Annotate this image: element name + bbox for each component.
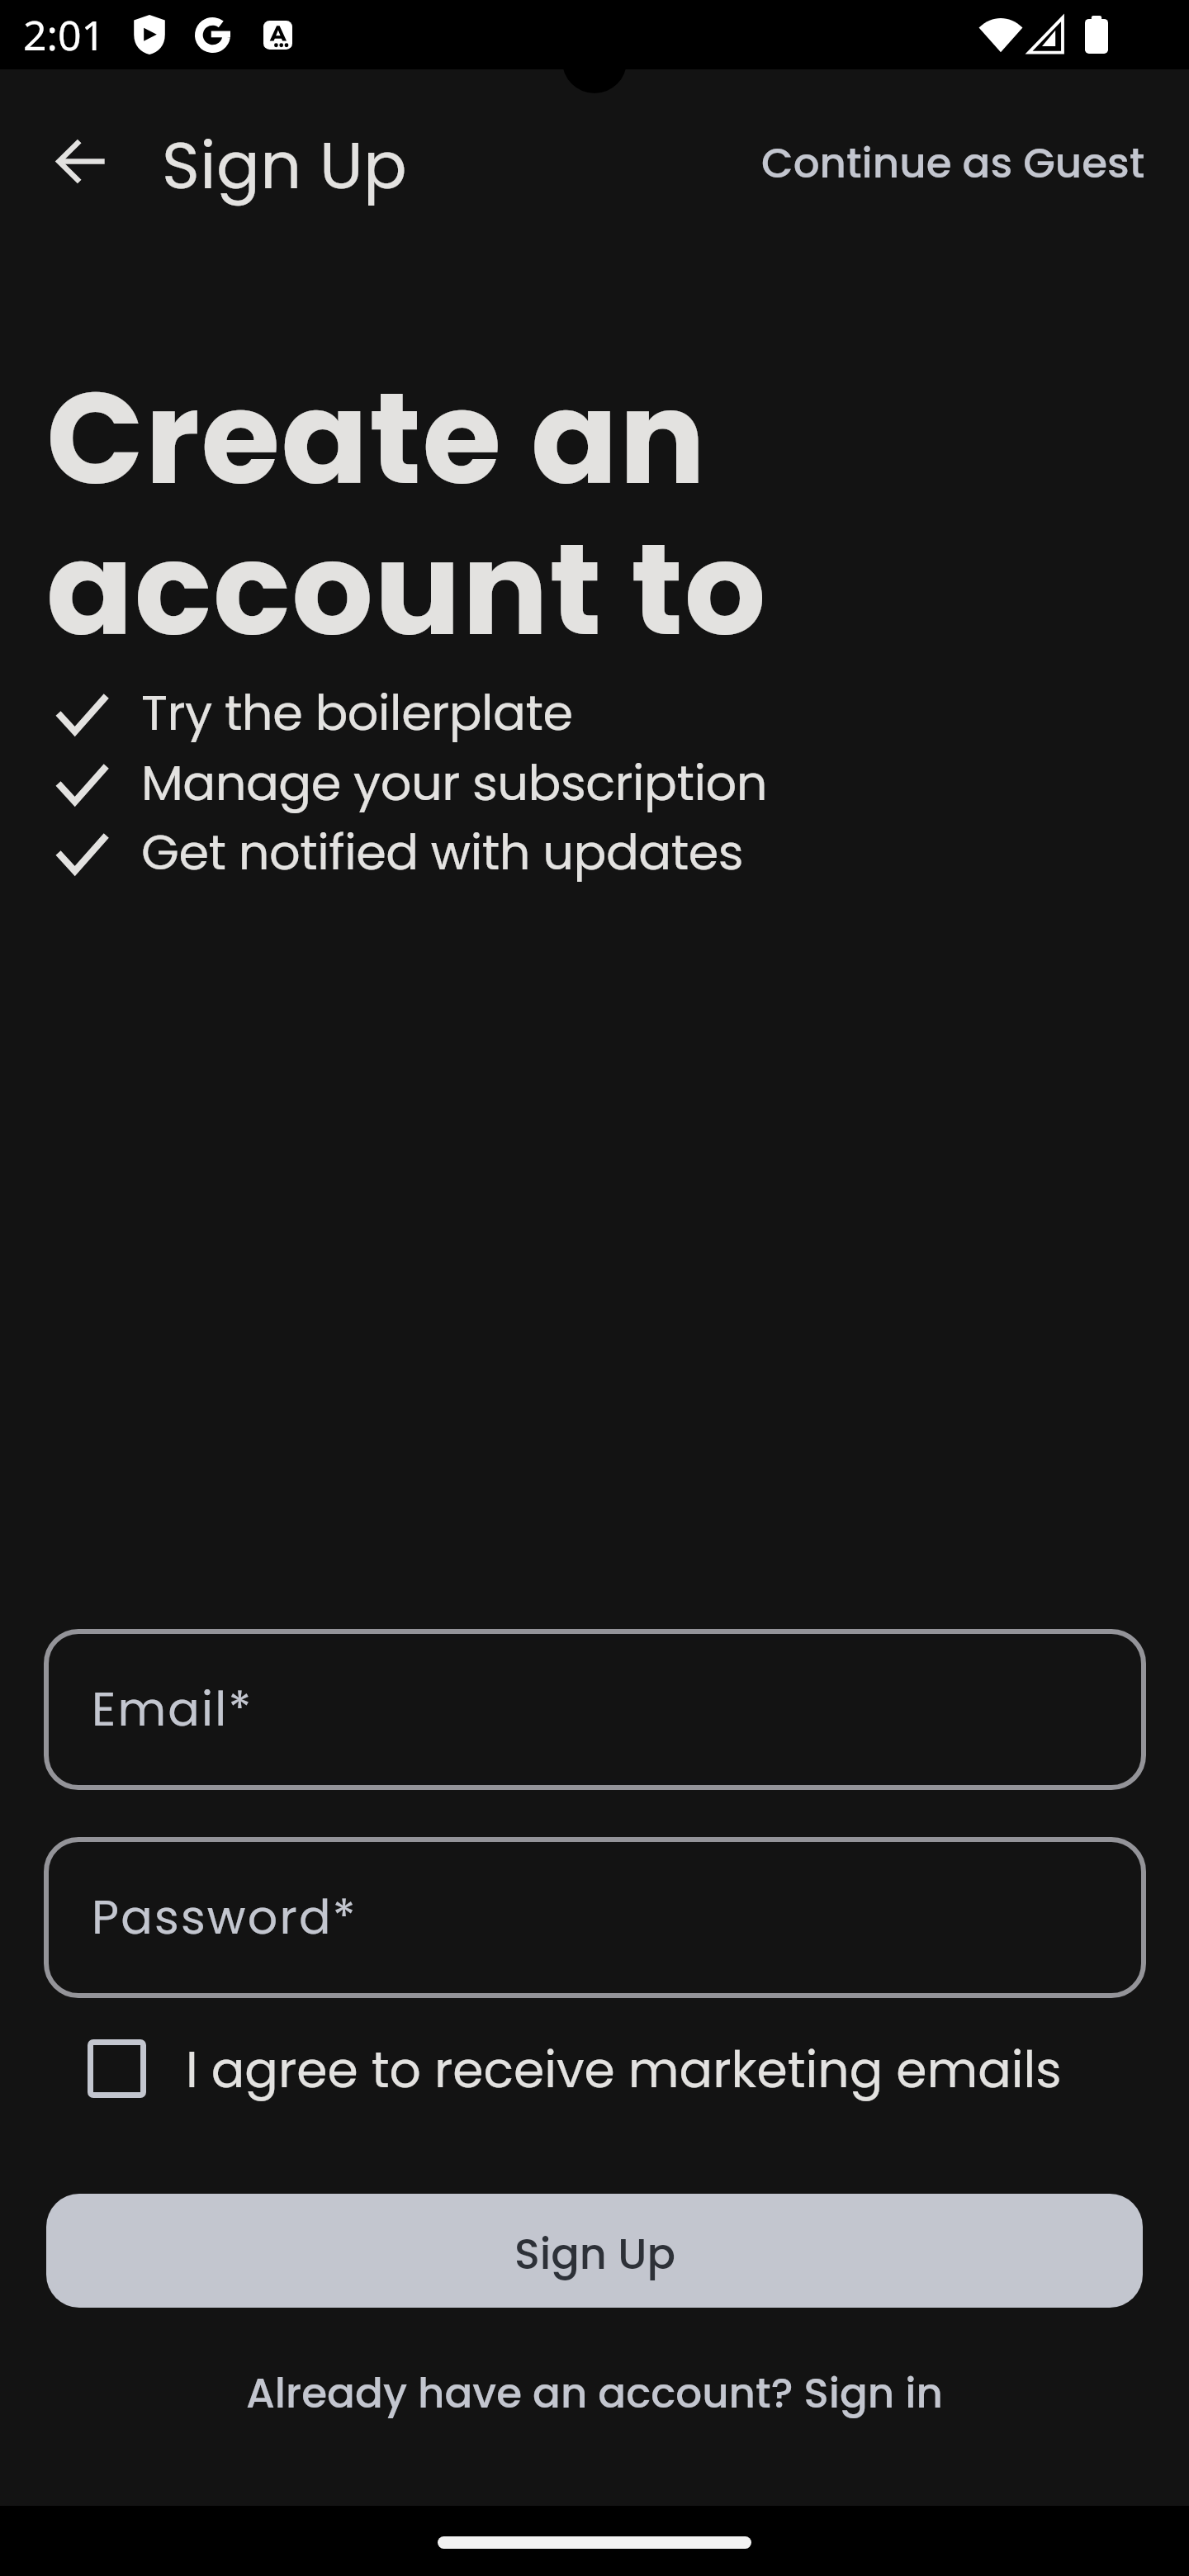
staticText: Manage your subscription xyxy=(141,749,768,817)
button[interactable]: Email* xyxy=(44,1629,1146,1790)
staticText: Get notified with updates xyxy=(141,818,744,887)
staticText: Create an account to xyxy=(46,348,1062,679)
staticText: Try the boilerplate xyxy=(141,679,573,747)
staticText: Sign Up xyxy=(514,2224,675,2283)
staticText: Email* xyxy=(92,1676,253,1742)
button[interactable]: Continue as Guest xyxy=(741,120,1165,207)
button[interactable]: I agree to receive marketing emails xyxy=(66,2020,1082,2116)
staticText: I agree to receive marketing emails xyxy=(186,2035,1062,2105)
button[interactable]: Already have an account? Sign in xyxy=(228,2351,961,2436)
staticText: Already have an account? Sign in xyxy=(246,2365,943,2422)
staticText: Sign Up xyxy=(162,121,408,211)
button[interactable]: Back xyxy=(35,115,128,208)
button[interactable]: Password* xyxy=(44,1837,1146,1998)
staticText: Continue as Guest xyxy=(761,135,1145,192)
staticText: 2:01 xyxy=(23,7,106,63)
button[interactable]: Sign Up xyxy=(46,2194,1143,2308)
staticText: Password* xyxy=(92,1884,358,1950)
